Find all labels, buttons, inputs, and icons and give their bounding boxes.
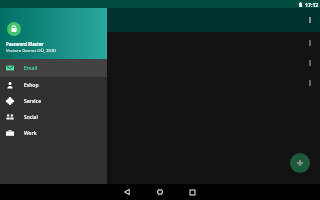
button[interactable]: Back	[120, 185, 134, 199]
button[interactable]: Home	[153, 185, 167, 199]
staticText: Social	[24, 114, 38, 121]
button[interactable]: Item options	[303, 56, 317, 70]
button[interactable]: Add	[290, 153, 310, 173]
staticText: Work	[24, 130, 37, 137]
button[interactable]: Social	[0, 109, 107, 125]
staticText: Password Master	[6, 41, 44, 47]
button[interactable]: Item options	[0, 52, 320, 72]
button[interactable]: Email	[0, 59, 107, 77]
button[interactable]: More options	[303, 13, 317, 27]
button[interactable]: Item options	[0, 32, 320, 52]
button[interactable]: Eshop	[0, 77, 107, 93]
staticText: 17:12	[305, 1, 319, 8]
staticText: Vectara Games OÜ, 2020	[6, 47, 56, 53]
staticText: Service	[24, 98, 42, 105]
button[interactable]: Item options	[303, 76, 317, 90]
button[interactable]: Work	[0, 125, 107, 141]
button[interactable]: Item options	[0, 72, 320, 92]
staticText: Email	[24, 65, 38, 72]
button[interactable]: Recents	[185, 185, 199, 199]
button[interactable]: Item options	[303, 36, 317, 50]
button[interactable]: Service	[0, 93, 107, 109]
staticText: Eshop	[24, 82, 39, 89]
